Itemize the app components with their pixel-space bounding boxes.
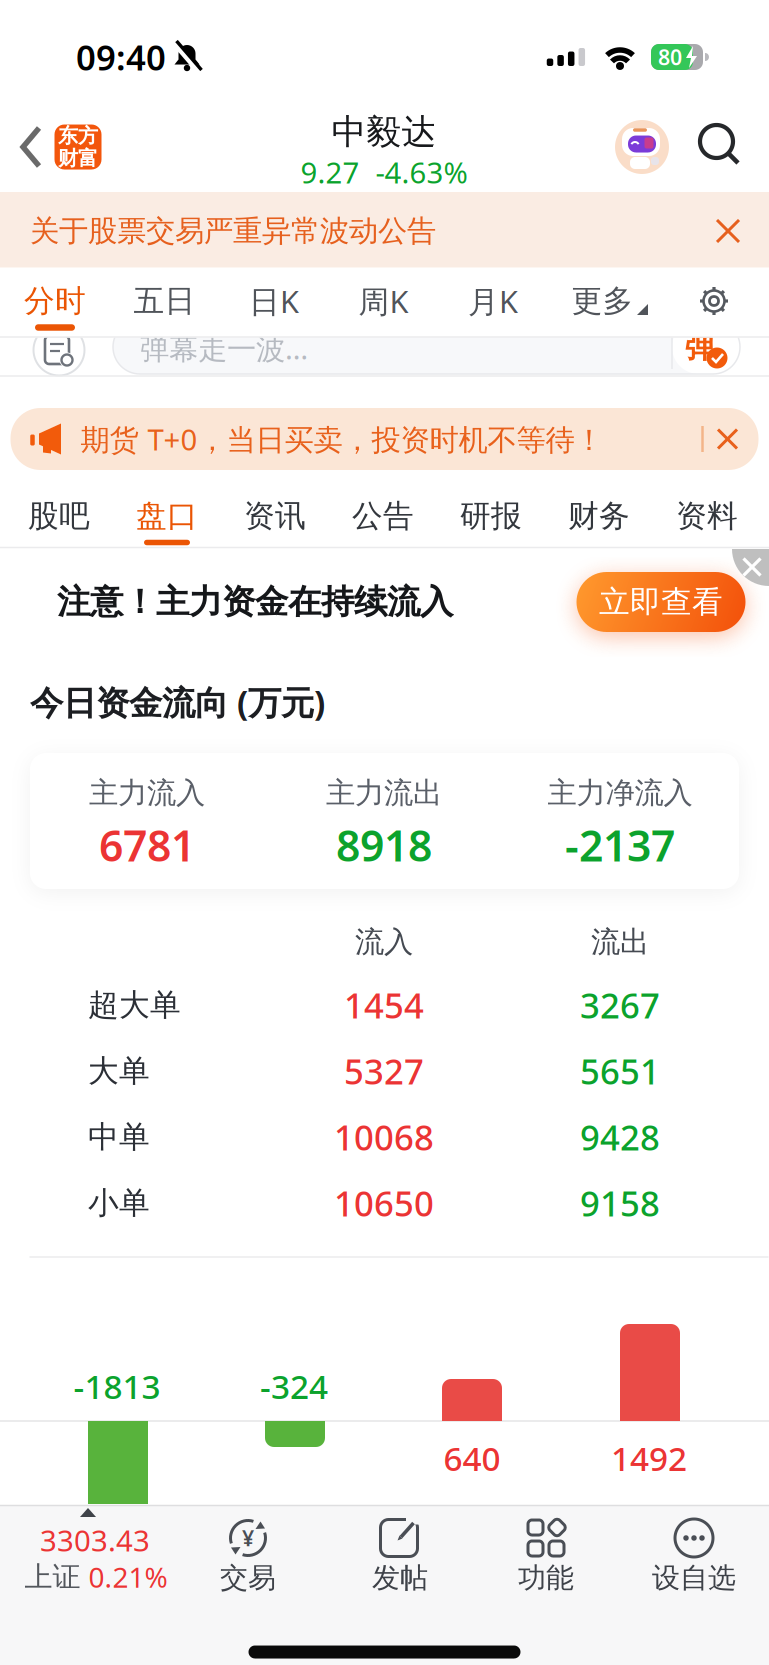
staticText: 立即查看 xyxy=(599,583,723,621)
staticText: 今日资金流向 (万元) xyxy=(30,680,325,724)
staticText: 期货 T+0，当日买卖，投资时机不等待！ xyxy=(80,419,603,458)
staticText: 注意！主力资金在持续流入 xyxy=(57,581,453,622)
staticText: 功能 xyxy=(518,1561,574,1595)
button[interactable]: 东方财富 xyxy=(54,124,101,169)
button[interactable]: Settings xyxy=(696,283,732,319)
button[interactable]: 资料 xyxy=(659,490,755,542)
staticText: 中单 xyxy=(88,1118,150,1156)
staticText: 10068 xyxy=(334,1114,434,1160)
staticText: 东方 xyxy=(58,123,98,148)
staticText: 分时 xyxy=(24,282,86,320)
staticText: 09:40 xyxy=(76,34,166,80)
staticText: 超大单 xyxy=(88,986,181,1024)
staticText: 弹 xyxy=(684,328,715,366)
button[interactable]: 日K xyxy=(224,273,324,329)
staticText: -4.63% xyxy=(375,152,467,191)
button[interactable]: 关于股票交易严重异常波动公告 xyxy=(30,213,630,249)
staticText: 3267 xyxy=(580,982,660,1028)
staticText: -324 xyxy=(260,1364,328,1408)
staticText: 0.21% xyxy=(88,1558,167,1596)
staticText: 日K xyxy=(249,281,299,321)
staticText: ¥ xyxy=(242,1524,254,1552)
staticText: 更多 xyxy=(571,282,633,320)
staticText: 主力流出 xyxy=(326,775,442,811)
button[interactable]: 周K xyxy=(333,273,433,329)
staticText: 1454 xyxy=(344,982,424,1028)
staticText: 10650 xyxy=(334,1180,434,1226)
button[interactable]: 注意！主力资金在持续流入 xyxy=(57,581,577,622)
staticText: 主力流入 xyxy=(89,775,205,811)
staticText: 8918 xyxy=(336,817,432,873)
button[interactable]: 发帖 xyxy=(340,1505,460,1605)
button[interactable]: Back xyxy=(20,126,42,168)
button[interactable]: 股吧 xyxy=(11,490,107,542)
staticText: 小单 xyxy=(88,1184,150,1222)
button[interactable]: 分时 xyxy=(5,273,105,329)
staticText: 盘口 xyxy=(136,497,198,535)
staticText: 关于股票交易严重异常波动公告 xyxy=(30,213,436,249)
button[interactable]: 立即查看 xyxy=(576,572,745,632)
staticText: 五日 xyxy=(133,282,195,320)
staticText: 640 xyxy=(443,1436,500,1480)
staticText: 资料 xyxy=(676,497,738,535)
button[interactable]: 公告 xyxy=(335,490,431,542)
button[interactable]: 财务 xyxy=(551,490,647,542)
button[interactable]: 功能 xyxy=(486,1505,606,1605)
staticText: 80 xyxy=(658,43,682,71)
staticText: 5651 xyxy=(580,1048,660,1094)
button[interactable]: 弹幕设置 xyxy=(33,324,85,376)
staticText: 上证 xyxy=(24,1560,80,1594)
staticText: 资讯 xyxy=(244,497,306,535)
button[interactable]: 月K xyxy=(443,273,543,329)
staticText: 5327 xyxy=(344,1048,424,1094)
button[interactable]: ¥ xyxy=(188,1505,308,1605)
staticText: 发帖 xyxy=(372,1561,428,1595)
staticText: 设自选 xyxy=(652,1561,736,1595)
staticText: 大单 xyxy=(88,1052,150,1090)
button[interactable]: 设自选 xyxy=(634,1505,754,1605)
button[interactable]: AI助手 xyxy=(615,119,669,175)
button[interactable]: Search xyxy=(699,124,741,166)
button[interactable]: 更多 xyxy=(552,273,652,329)
staticText: 交易 xyxy=(220,1561,276,1595)
button[interactable]: 期货 T+0，当日买卖，投资时机不等待！ xyxy=(10,408,758,470)
staticText: 1492 xyxy=(611,1436,687,1480)
staticText: 研报 xyxy=(460,497,522,535)
staticText: 财富 xyxy=(58,146,98,171)
button[interactable]: 资讯 xyxy=(227,490,323,542)
staticText: 9428 xyxy=(580,1114,660,1160)
staticText: 流出 xyxy=(591,924,649,960)
staticText: 9158 xyxy=(580,1180,660,1226)
staticText: 弹幕走一波… xyxy=(140,328,308,367)
staticText: 中毅达 xyxy=(331,111,436,153)
staticText: 公告 xyxy=(352,497,414,535)
button[interactable]: 弹幕走一波… xyxy=(113,320,740,374)
button[interactable]: 研报 xyxy=(443,490,539,542)
button[interactable]: Close xyxy=(717,220,739,242)
staticText: 主力净流入 xyxy=(547,775,692,811)
staticText: 股吧 xyxy=(28,497,90,535)
staticText: 流入 xyxy=(355,924,413,960)
staticText: 月K xyxy=(468,281,518,321)
button[interactable]: 五日 xyxy=(114,273,214,329)
staticText: 9.27 xyxy=(300,152,359,191)
button[interactable]: Dismiss xyxy=(743,558,760,575)
staticText: 6781 xyxy=(99,817,195,873)
button[interactable]: 3303.43 xyxy=(0,1505,190,1605)
staticText: 周K xyxy=(358,281,408,321)
staticText: -2137 xyxy=(565,817,675,873)
staticText: -1813 xyxy=(73,1364,160,1408)
staticText: 财务 xyxy=(568,497,630,535)
button[interactable]: 盘口 xyxy=(119,490,215,542)
staticText: 3303.43 xyxy=(40,1520,150,1559)
button[interactable]: Close xyxy=(718,429,737,448)
